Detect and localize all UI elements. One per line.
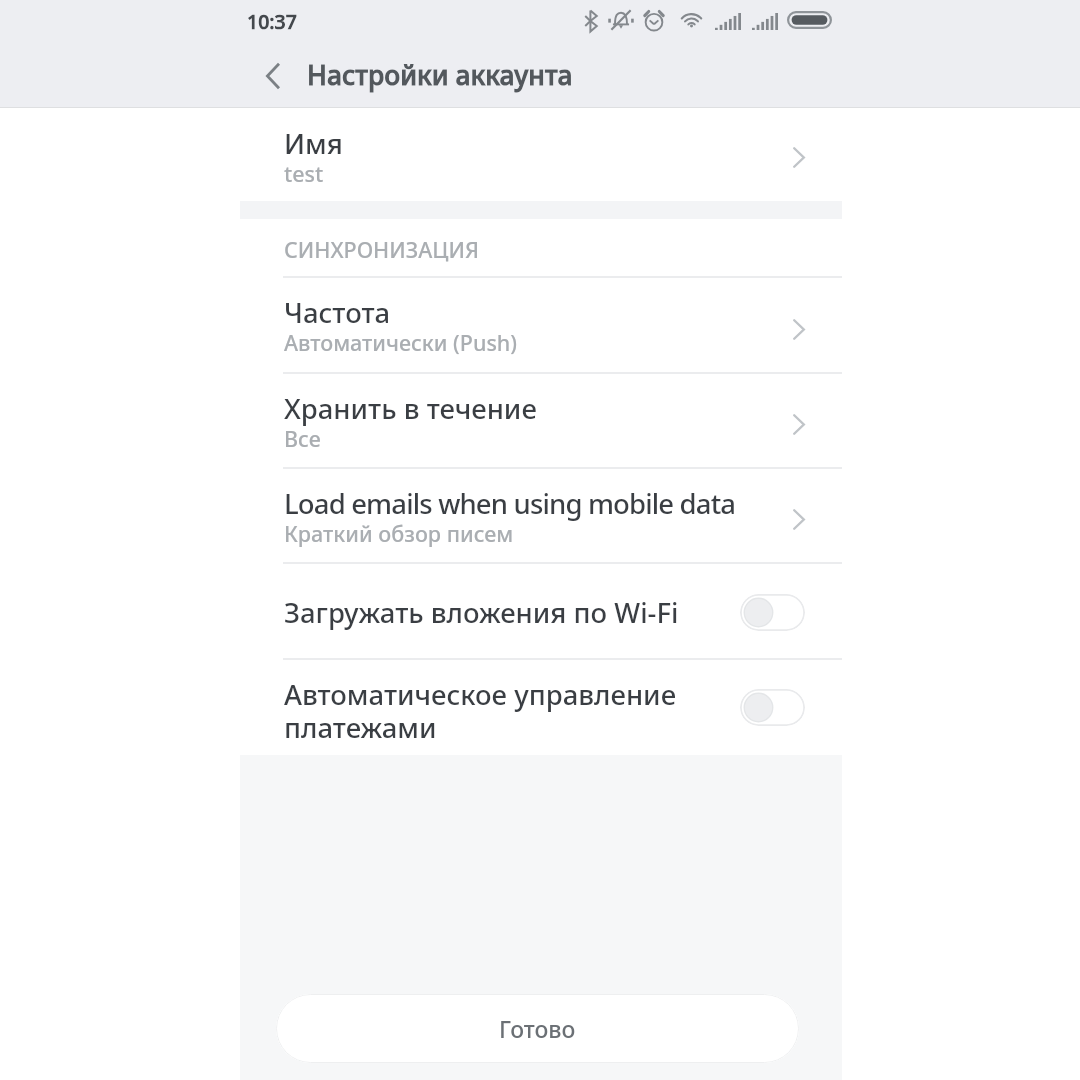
button[interactable]: Toggle [740, 689, 805, 726]
staticText: Загружать вложения по Wi-Fi [284, 594, 679, 631]
staticText: Load emails when using mobile data [284, 485, 736, 522]
button[interactable]: Загружать вложения по Wi-Fi [240, 564, 842, 660]
staticText: test [284, 159, 324, 188]
button[interactable]: Хранить в течение [240, 374, 842, 469]
button[interactable]: Back [245, 48, 301, 104]
staticText: Краткий обзор писем [284, 519, 514, 548]
staticText: Имя [284, 125, 343, 162]
staticText: Хранить в течение [284, 390, 537, 427]
staticText: Автоматическое управление [284, 676, 677, 713]
staticText: Готово [499, 1013, 576, 1044]
staticText: платежами [284, 709, 437, 746]
button[interactable]: Автоматическое управление [240, 660, 842, 755]
button[interactable]: Toggle [740, 594, 805, 631]
staticText: СИНХРОНИЗАЦИЯ [284, 235, 479, 264]
button[interactable]: Имя [240, 107, 842, 201]
staticText: Настройки аккаунта [307, 57, 573, 93]
staticText: 10:37 [247, 8, 297, 35]
staticText: Частота [284, 294, 391, 331]
staticText: Автоматически (Push) [284, 328, 518, 357]
button[interactable]: Готово [276, 994, 799, 1063]
button[interactable]: Частота [240, 278, 842, 374]
staticText: Все [284, 424, 321, 453]
button[interactable]: Load emails when using mobile data [240, 469, 842, 564]
